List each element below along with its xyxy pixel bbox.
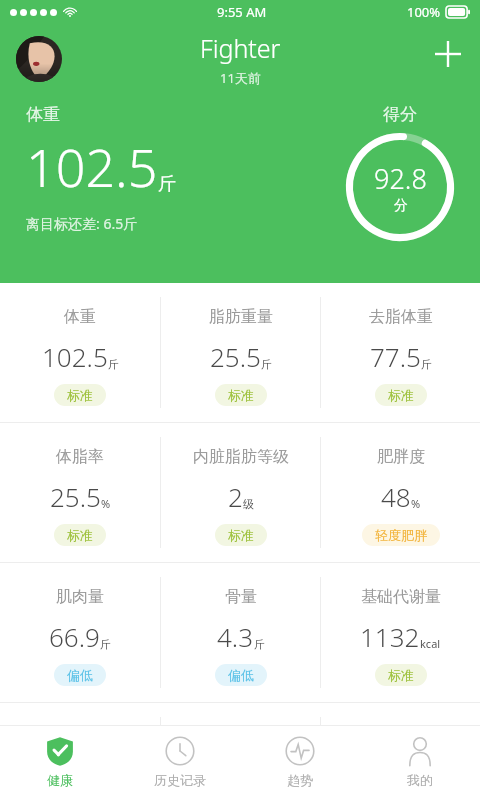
staticText: 55.0 [50,759,101,794]
button[interactable]: 肌肉量 [0,563,160,702]
staticText: 离目标还差: 6.5斤 [26,214,138,233]
staticText: 标准 [228,527,254,543]
button[interactable]: Profile avatar [16,36,62,82]
staticText: 级 [243,497,254,511]
button[interactable]: 脂肪重量 [161,283,320,422]
button[interactable]: 内脏脂肪等级 [161,423,320,562]
staticText: 脂肪重量 [209,307,273,327]
staticText: 骨量 [225,587,257,607]
staticText: 斤 [100,637,111,651]
staticText: 健康 [47,772,73,788]
button[interactable]: 历史记录 [120,726,240,800]
button[interactable]: 去脂体重 [321,283,480,422]
staticText: 偏低 [228,667,254,683]
button[interactable]: 体重 [0,283,160,422]
staticText: 得分 [383,104,417,125]
staticText: 体重 [64,307,96,327]
staticText: 102.5 [26,131,158,202]
staticText: Fighter [200,31,281,65]
staticText: kcal [420,636,441,651]
button[interactable]: 骨量 [161,563,320,702]
button[interactable]: 肥胖度 [321,423,480,562]
staticText: 标准 [67,527,93,543]
staticText: 标准 [228,387,254,403]
staticText: 标准 [388,387,414,403]
staticText: 体重 [26,104,60,125]
staticText: 斤 [421,357,432,371]
staticText: 2 [228,479,243,514]
staticText: 77.5 [370,339,421,374]
staticText: 25.5 [210,339,261,374]
staticText: 水分率 [56,727,104,747]
staticText: 4.3 [217,619,254,654]
staticText: 100% [407,3,441,21]
staticText: 体脂率 [56,447,104,467]
staticText: 身体年龄 [369,727,433,747]
staticText: 标准 [67,387,93,403]
staticText: 斤 [108,357,119,371]
button[interactable]: 身体年龄 [321,703,480,800]
button[interactable]: 水分率 [0,703,160,800]
staticText: 92.8 [374,160,427,197]
button[interactable]: 我的 [360,726,480,800]
staticText: % [101,496,111,511]
staticText: 基础代谢量 [361,587,441,607]
button[interactable]: 健康 [0,726,120,800]
staticText: 斤 [254,637,265,651]
staticText: 轻度肥胖 [375,527,427,543]
staticText: 岁 [410,777,421,791]
staticText: 9:55 AM [217,3,267,21]
staticText: 斤 [158,173,176,196]
staticText: 30 [380,759,410,794]
staticText: 1132 [360,619,420,654]
staticText: 11天前 [220,69,261,87]
staticText: 分 [394,197,408,215]
staticText: 标准 [388,667,414,683]
staticText: 102.5 [42,339,108,374]
staticText: 我的 [407,772,433,788]
staticText: 66.9 [49,619,100,654]
staticText: 内脏脂肪等级 [193,447,289,467]
staticText: 去脂体重 [369,307,433,327]
button[interactable]: 蛋白质率 [161,703,320,800]
staticText: 肥胖度 [377,447,425,467]
staticText: 斤 [261,357,272,371]
button[interactable]: 92.8 [346,133,454,241]
button[interactable]: 体脂率 [0,423,160,562]
button[interactable]: Add measurement [424,30,472,78]
staticText: % [411,496,421,511]
button[interactable]: 趋势 [240,726,360,800]
staticText: 偏低 [67,667,93,683]
staticText: 48 [381,479,411,514]
button[interactable]: 基础代谢量 [321,563,480,702]
staticText: 历史记录 [154,772,206,788]
staticText: 25.5 [50,479,101,514]
staticText: 肌肉量 [56,587,104,607]
staticText: 趋势 [287,772,313,788]
